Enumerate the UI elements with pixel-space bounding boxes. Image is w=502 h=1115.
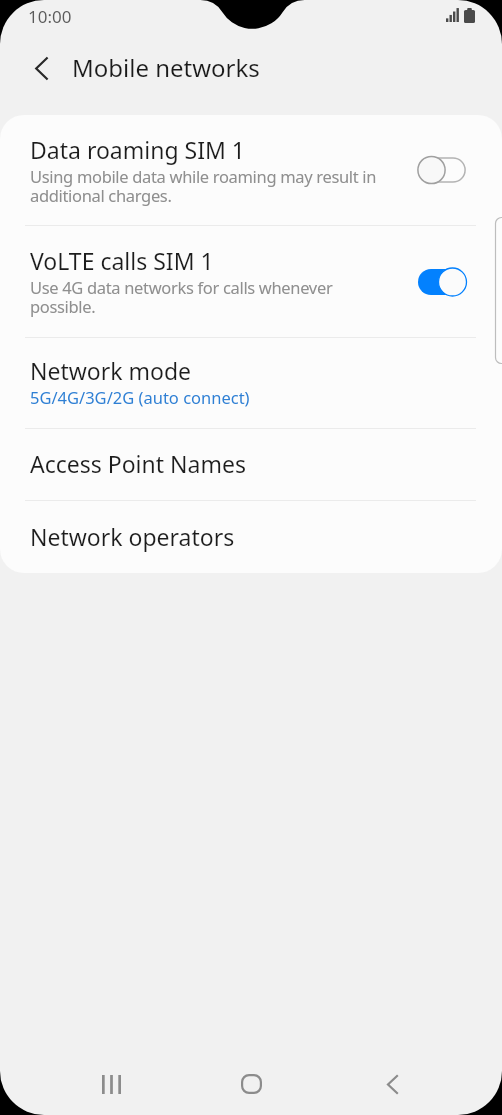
staticText: Use 4G data networks for calls whenever …	[30, 276, 333, 318]
button[interactable]: Data roaming SIM 1	[0, 115, 502, 225]
staticText: Access Point Names	[30, 448, 246, 479]
button[interactable]: Back	[367, 1055, 417, 1113]
button[interactable]: Home	[226, 1055, 276, 1113]
staticText: Mobile networks	[72, 51, 260, 84]
staticText: Data roaming SIM 1	[30, 134, 245, 165]
button[interactable]: VoLTE calls SIM 1	[0, 226, 502, 337]
staticText: VoLTE calls SIM 1	[30, 245, 214, 276]
staticText: Network operators	[30, 521, 235, 552]
staticText: 10:00	[28, 5, 72, 28]
button[interactable]: Switch on	[418, 269, 466, 295]
staticText: Network mode	[30, 355, 192, 386]
button[interactable]: Network mode	[0, 338, 502, 428]
staticText: Using mobile data while roaming may resu…	[30, 165, 377, 207]
button[interactable]: Back	[17, 44, 66, 93]
button[interactable]: Recent apps	[86, 1055, 136, 1113]
staticText: 5G/4G/3G/2G (auto connect)	[30, 386, 250, 408]
button[interactable]: Network operators	[0, 501, 502, 573]
button[interactable]: Access Point Names	[0, 429, 502, 500]
button[interactable]: Switch off	[418, 157, 466, 183]
